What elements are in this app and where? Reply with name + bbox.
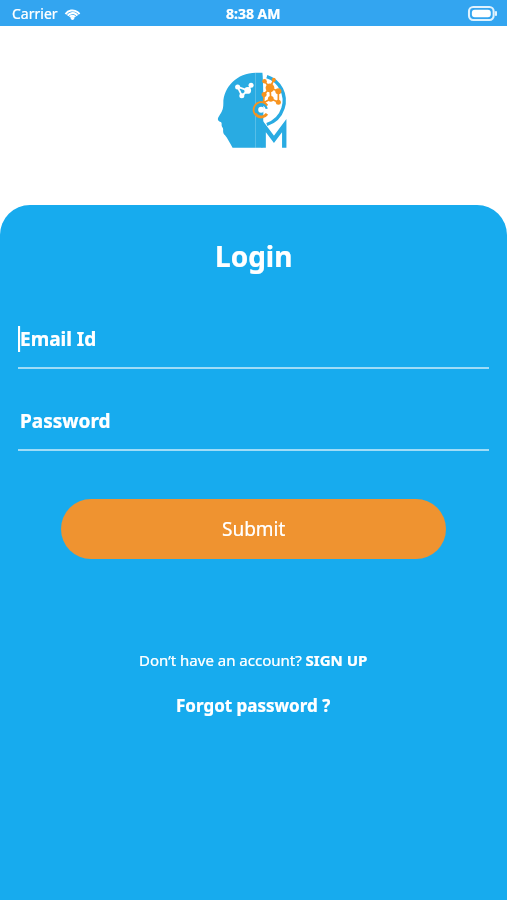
staticText: Forgot password ? (176, 694, 331, 717)
button[interactable]: Forgot password ? (168, 690, 339, 721)
other: Battery full (469, 7, 497, 20)
staticText: Login (215, 237, 293, 275)
staticText: 8:38 AM (226, 4, 281, 23)
staticText: Email Id (20, 326, 97, 352)
button[interactable]: Don’t have an account? SIGN UP (131, 646, 376, 674)
other: App logo (212, 68, 296, 156)
staticText: Submit (222, 516, 286, 542)
staticText: Password (20, 408, 111, 434)
button[interactable]: Email Id (0, 323, 507, 369)
button[interactable]: Password (0, 405, 507, 451)
staticText: Don’t have an account? SIGN UP (139, 650, 368, 670)
staticText: Carrier (12, 4, 58, 23)
other: Wi-Fi (64, 7, 81, 20)
button[interactable]: Submit (61, 499, 446, 559)
